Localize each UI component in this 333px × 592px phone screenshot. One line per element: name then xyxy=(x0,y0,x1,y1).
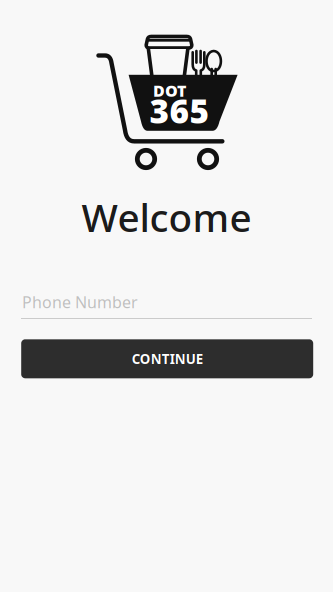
button[interactable]: CONTINUE xyxy=(21,339,313,378)
staticText: 365 xyxy=(149,88,209,133)
staticText: CONTINUE xyxy=(132,350,203,368)
staticText: DOT xyxy=(153,80,186,101)
staticText: Welcome xyxy=(81,191,251,243)
staticText: Phone Number xyxy=(22,291,138,313)
